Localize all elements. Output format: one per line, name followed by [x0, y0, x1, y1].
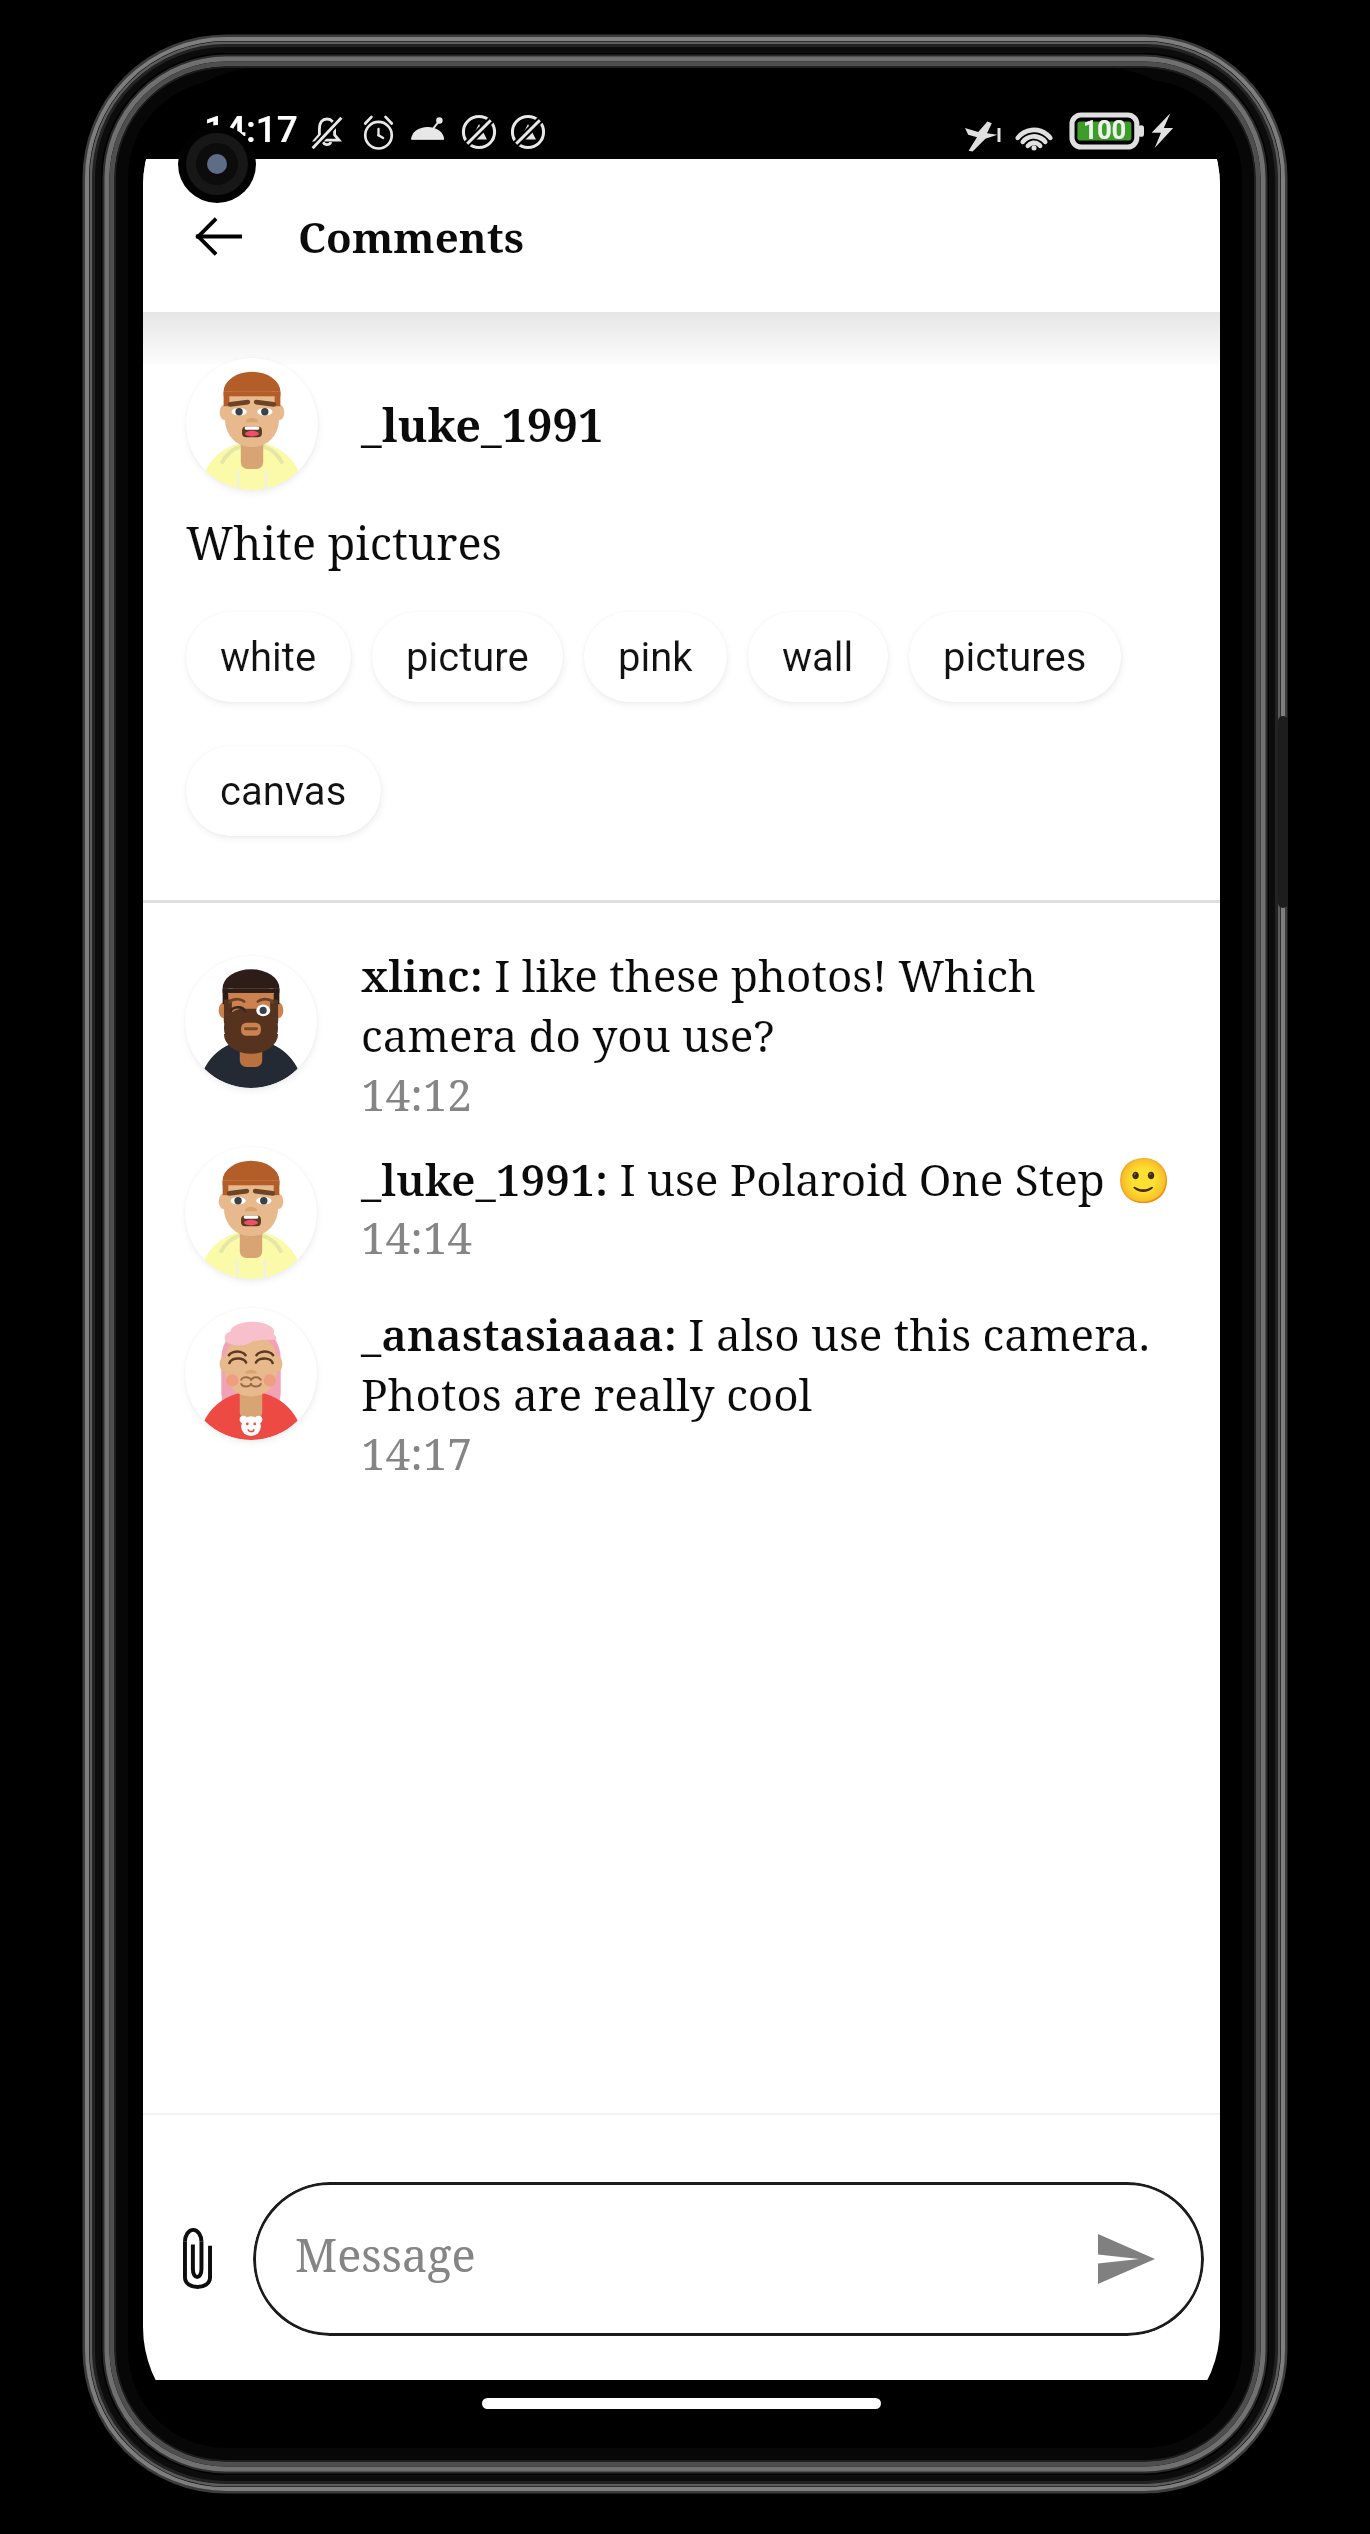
- staticText: pictures: [943, 634, 1087, 681]
- button[interactable]: pink: [584, 612, 727, 702]
- staticText: _luke_1991: [361, 394, 604, 455]
- staticText: 100: [1083, 116, 1127, 145]
- staticText: wall: [782, 634, 854, 681]
- staticText: White pictures: [186, 512, 502, 573]
- button[interactable]: picture: [372, 612, 563, 702]
- staticText: Comments: [298, 208, 524, 265]
- staticText: pink: [618, 634, 693, 681]
- button[interactable]: white: [186, 612, 351, 702]
- staticText: 14:12: [361, 1064, 472, 1120]
- staticText: xlinc: I like these photos! Which camera…: [361, 945, 1173, 1065]
- button[interactable]: _anastasiaaaa: I also use this camera. P…: [143, 1308, 1220, 1484]
- button[interactable]: pictures: [909, 612, 1121, 702]
- button[interactable]: Attach file: [157, 2219, 237, 2299]
- button[interactable]: _luke_1991: I use Polaroid One Step 🙂: [143, 1147, 1220, 1323]
- staticText: 14:17: [361, 1423, 472, 1479]
- staticText: Message: [295, 2224, 1086, 2285]
- staticText: 14:17: [204, 108, 298, 151]
- button[interactable]: _luke_1991: [143, 353, 1220, 495]
- staticText: 14:14: [361, 1207, 472, 1267]
- staticText: _anastasiaaaa: I also use this camera. P…: [361, 1304, 1173, 1424]
- staticText: canvas: [220, 768, 347, 815]
- button[interactable]: canvas: [186, 746, 381, 836]
- button[interactable]: Back: [175, 193, 261, 279]
- button[interactable]: Message: [253, 2182, 1204, 2336]
- staticText: _luke_1991: I use Polaroid One Step 🙂: [361, 1148, 1171, 1208]
- staticText: white: [220, 634, 317, 681]
- staticText: picture: [406, 634, 529, 681]
- button[interactable]: wall: [748, 612, 888, 702]
- button[interactable]: Send: [1086, 2219, 1166, 2299]
- button[interactable]: xlinc: I like these photos! Which camera…: [143, 956, 1220, 1132]
